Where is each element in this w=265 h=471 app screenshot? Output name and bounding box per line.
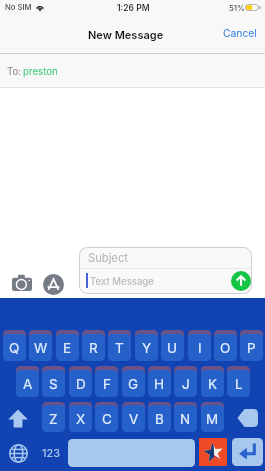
button[interactable]: T (108, 334, 131, 361)
button[interactable]: M (201, 405, 224, 432)
button[interactable]: I (188, 334, 211, 361)
staticText: Z (49, 411, 58, 427)
button[interactable]: Space (68, 439, 195, 467)
button[interactable]: P (240, 334, 263, 361)
button[interactable]: D (69, 370, 92, 397)
staticText: L (235, 376, 243, 392)
button[interactable]: Take photo (12, 274, 32, 291)
button[interactable]: N (174, 405, 197, 432)
button[interactable]: Emoji keyboard (199, 438, 227, 466)
staticText: F (103, 376, 111, 392)
button[interactable]: E (56, 334, 79, 361)
staticText: Y (142, 340, 152, 356)
button[interactable]: A (16, 370, 39, 397)
staticText: X (76, 411, 86, 427)
button[interactable]: L (227, 370, 250, 397)
staticText: W (34, 340, 48, 356)
button[interactable]: J (174, 370, 197, 397)
staticText: T (115, 340, 124, 356)
button[interactable]: Backspace (237, 408, 258, 428)
staticText: I (198, 340, 202, 356)
staticText: N (180, 411, 191, 427)
staticText: A (23, 376, 33, 392)
staticText: O (220, 340, 231, 356)
button[interactable]: G (122, 370, 145, 397)
button[interactable]: Switch keyboard (9, 444, 28, 463)
button[interactable]: Return (232, 438, 263, 466)
button[interactable]: U (161, 334, 184, 361)
button[interactable]: W (29, 334, 52, 361)
staticText: New Message (88, 28, 164, 41)
button[interactable]: H (148, 370, 171, 397)
staticText: To: (7, 66, 22, 78)
button[interactable]: Cancel (215, 23, 265, 43)
staticText: B (155, 411, 164, 427)
staticText: 1:26 PM (117, 3, 150, 13)
button[interactable]: R (82, 334, 105, 361)
button[interactable]: Z (42, 405, 65, 432)
staticText: M (206, 411, 219, 427)
button[interactable]: K (201, 370, 224, 397)
staticText: Subject (88, 251, 128, 265)
staticText: G (128, 376, 139, 392)
button[interactable]: F (95, 370, 118, 397)
button[interactable]: Subject (79, 247, 252, 294)
staticText: Text Message (90, 276, 154, 288)
staticText: C (102, 411, 112, 427)
staticText: No SIM (5, 3, 32, 12)
button[interactable]: S (42, 370, 65, 397)
staticText: preston (23, 66, 58, 78)
staticText: E (63, 340, 72, 356)
staticText: K (208, 376, 218, 392)
staticText: V (129, 411, 139, 427)
staticText: R (89, 340, 98, 356)
staticText: S (49, 376, 58, 392)
staticText: Q (9, 340, 20, 356)
staticText: P (247, 340, 256, 356)
button[interactable]: To: (0, 54, 265, 87)
staticText: D (76, 376, 86, 392)
staticText: J (182, 376, 190, 392)
button[interactable]: Y (135, 334, 158, 361)
staticText: Cancel (223, 27, 257, 39)
button[interactable]: Q (3, 334, 26, 361)
button[interactable]: V (122, 405, 145, 432)
button[interactable]: O (214, 334, 237, 361)
staticText: 123 (42, 446, 60, 459)
button[interactable]: X (69, 405, 92, 432)
staticText: 51% (229, 3, 245, 12)
button[interactable]: App Store (43, 274, 64, 295)
staticText: H (154, 376, 165, 392)
button[interactable]: Send (231, 271, 251, 291)
button[interactable]: B (148, 405, 171, 432)
button[interactable]: C (95, 405, 118, 432)
staticText: U (167, 340, 178, 356)
button[interactable]: 123 (38, 443, 63, 461)
button[interactable]: Shift (8, 409, 28, 428)
